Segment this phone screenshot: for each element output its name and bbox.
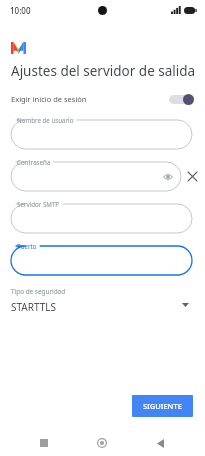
button[interactable]: Tipo de seguridad — [0, 287, 205, 314]
button[interactable]: Servidor SMTP — [11, 200, 192, 233]
button[interactable]: Inicio — [89, 430, 115, 456]
button[interactable]: Nombre de usuario — [11, 116, 192, 149]
other: Desplegar — [178, 298, 192, 312]
button[interactable]: Exigir inicio de sesión — [0, 90, 205, 108]
button[interactable]: Aplicaciones recientes — [31, 430, 57, 456]
staticText: Contraseña — [17, 158, 51, 166]
staticText: 10:00 — [10, 5, 31, 16]
button[interactable]: Borrar — [186, 170, 199, 183]
staticText: Nombre de usuario — [17, 116, 74, 124]
staticText: STARTTLS — [11, 300, 57, 314]
staticText: Servidor SMTP — [17, 200, 60, 208]
staticText: Puerto — [17, 242, 37, 250]
staticText: SIGUIENTE — [143, 401, 182, 411]
button[interactable]: Contraseña — [11, 158, 181, 191]
staticText: Exigir inicio de sesión — [11, 94, 87, 104]
staticText: Tipo de seguridad — [11, 287, 66, 296]
button[interactable]: Puerto — [11, 242, 192, 275]
staticText: Ajustes del servidor de salida — [11, 62, 196, 80]
button[interactable]: SIGUIENTE — [132, 395, 193, 417]
button[interactable]: Mostrar contraseña — [161, 170, 174, 183]
button[interactable]: Atrás — [147, 430, 173, 456]
